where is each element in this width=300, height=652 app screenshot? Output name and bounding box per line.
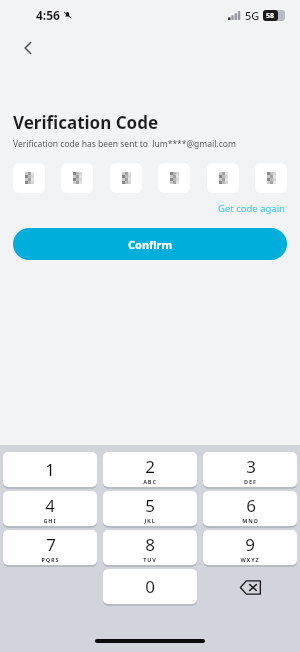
button[interactable]: Digit 2 [61,163,93,193]
button[interactable]: Backspace [200,568,300,607]
staticText: WXYZ [240,556,260,563]
staticText: GHI [43,517,57,524]
button[interactable]: 8 [103,530,197,565]
button[interactable]: 3 [203,452,297,487]
button[interactable]: 7 [3,530,97,565]
button[interactable]: 2 [103,452,197,487]
staticText: 6 [246,494,256,517]
staticText: JKL [144,517,156,524]
button[interactable]: Digit 6 [255,163,287,193]
button[interactable]: Back [12,32,44,64]
button[interactable]: Get code again [216,199,287,218]
button[interactable]: Digit 5 [207,163,239,193]
button[interactable]: 5 [103,491,197,526]
button[interactable]: Confirm [13,228,287,260]
staticText: 2 [145,455,155,478]
staticText: 4:56 [36,7,60,23]
staticText: Verification Code [13,111,159,134]
staticText: 4 [45,494,55,517]
button[interactable]: Digit 4 [158,163,190,193]
staticText: PQRS [41,556,60,563]
button[interactable]: 6 [203,491,297,526]
staticText: 58 [266,11,275,21]
staticText: 8 [145,533,155,556]
staticText: ABC [143,478,157,485]
staticText: 0 [145,575,155,598]
staticText: 1 [45,458,55,481]
button[interactable]: 9 [203,530,297,565]
staticText: 3 [246,455,256,478]
button[interactable]: Digit 1 [13,163,45,193]
staticText: 5G [245,8,260,23]
staticText: Confirm [128,237,173,252]
staticText: TUV [143,556,157,563]
staticText: DEF [244,478,257,485]
button[interactable]: 4 [3,491,97,526]
staticText: Verification code has been sent to lum**… [13,138,236,150]
staticText: Get code again [218,202,285,215]
staticText: 9 [245,533,255,556]
button[interactable]: 1 [3,452,97,487]
staticText: MNO [242,517,259,524]
button[interactable]: 0 [103,569,197,604]
button[interactable]: Digit 3 [110,163,142,193]
staticText: 7 [46,533,56,556]
staticText: 5 [145,494,155,517]
